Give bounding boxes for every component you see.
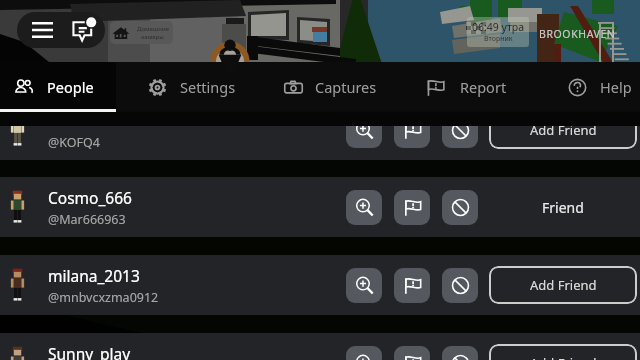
button[interactable]: People [2,62,134,112]
button[interactable]: milana_2013 [0,255,640,315]
staticText: BROOKHAVEN [539,27,616,41]
staticText: камеры [141,33,164,41]
staticText: Домашние [137,25,169,33]
button[interactable]: Block player [442,346,478,360]
staticText: Captures [315,77,377,97]
button[interactable]: Block player [442,268,478,303]
button[interactable]: Report player [394,268,430,303]
button[interactable]: Friend [489,188,637,226]
staticText: milana_2013 [48,265,140,286]
staticText: @mnbvcxzma0912 [48,289,159,306]
staticText: @Mar666963 [48,211,126,228]
staticText: Add Friend [530,354,597,360]
staticText: @KOFQ4 [48,134,100,151]
staticText: Sunny_play [48,343,131,360]
staticText: Cosmo_666 [48,187,132,208]
button[interactable]: Домашние [110,21,173,44]
staticText: People [47,77,94,97]
button[interactable]: @KOFQ4 [0,126,640,160]
button[interactable]: Captures [272,62,404,112]
button[interactable]: Help [556,62,640,112]
staticText: Вторник [484,34,513,44]
button[interactable]: Report [414,62,548,112]
button[interactable]: Cosmo_666 [0,177,640,237]
button[interactable]: Inspect avatar [346,190,382,225]
button[interactable]: Inspect avatar [346,346,382,360]
button[interactable]: Add Friend [489,126,637,149]
staticText: Settings [180,77,236,97]
button[interactable]: Add Friend [489,344,637,360]
button[interactable]: Block player [442,190,478,225]
button[interactable]: Block player [442,126,478,148]
staticText: Help [600,77,632,97]
button[interactable]: Report player [394,126,430,148]
button[interactable]: Report player [394,346,430,360]
button[interactable]: Inspect avatar [346,126,382,148]
button[interactable]: Inspect avatar [346,268,382,303]
button[interactable]: Report player [394,190,430,225]
button[interactable]: Emotes [211,38,249,78]
button[interactable]: Settings [136,62,268,112]
button[interactable]: Menu [21,12,63,48]
staticText: 06:49 утра [472,20,525,34]
staticText: Friend [542,198,584,217]
staticText: Add Friend [530,276,597,294]
button[interactable]: Chat [63,12,105,48]
button[interactable]: Sunny_play [0,333,640,360]
staticText: Report [460,77,507,97]
staticText: Add Friend [530,126,597,139]
button[interactable]: Add Friend [489,266,637,304]
